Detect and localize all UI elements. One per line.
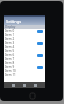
button[interactable]: Item 9 [4,65,45,69]
button[interactable]: Item 3 [4,41,45,45]
staticText: Item 4 [5,45,15,49]
staticText: Item 6 [5,53,15,57]
staticText: Item 9 [5,65,15,69]
button[interactable]: Settings [4,17,45,25]
staticText: Item 11 [5,73,16,77]
staticText: Item 2 [5,37,15,41]
button[interactable]: Item 2 [4,37,45,41]
staticText: Item 8 [5,61,15,65]
button[interactable]: Item 6 [4,53,45,57]
button[interactable]: Item 7 [4,57,45,61]
staticText: Item 7 [5,57,15,61]
button[interactable]: Item 10 [4,69,45,73]
button[interactable]: Item 1 [4,33,45,37]
button[interactable]: Item 4 [4,45,45,49]
staticText: Item 0 [5,29,15,33]
button[interactable]: Item 0 [4,29,45,33]
button[interactable]: Item 11 [4,73,45,77]
staticText: Settings [6,19,22,24]
button[interactable]: Item 8 [4,61,45,65]
button[interactable]: Item 5 [4,49,45,53]
staticText: Item 1 [5,33,15,37]
staticText: Item 5 [5,49,15,53]
staticText: Item 3 [5,41,15,45]
staticText: Item 10 [5,69,16,73]
staticText: Display [5,25,16,29]
